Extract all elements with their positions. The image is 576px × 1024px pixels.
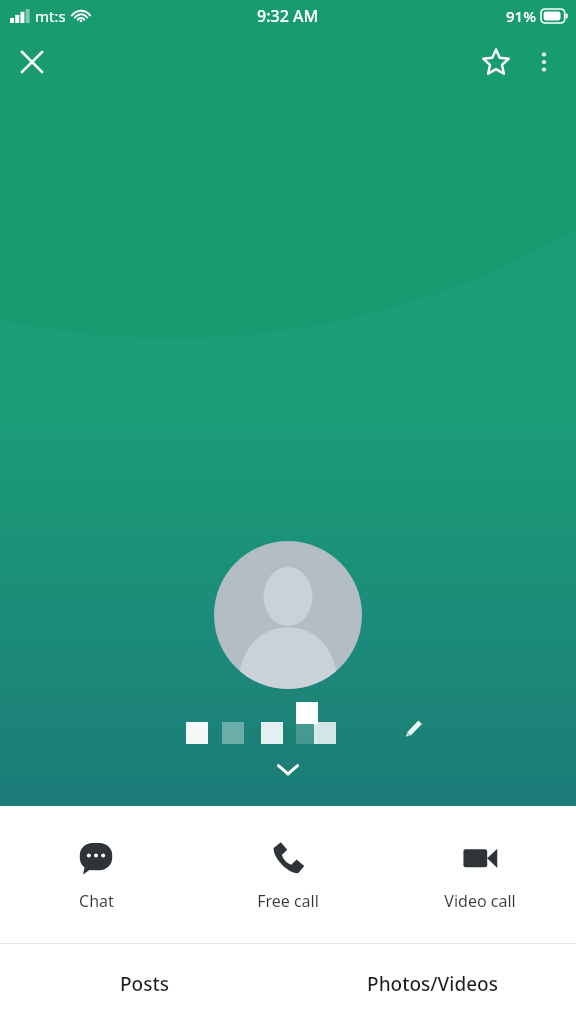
staticText: Video call <box>444 890 516 912</box>
button[interactable]: Edit name <box>392 706 436 750</box>
button[interactable]: Chat <box>0 830 192 920</box>
button[interactable]: Video call <box>384 830 576 920</box>
staticText: mt:s <box>35 6 66 26</box>
button[interactable]: Posts <box>0 944 288 1024</box>
staticText: Chat <box>79 890 114 912</box>
button[interactable]: More options <box>520 38 568 86</box>
button[interactable]: Free call <box>192 830 384 920</box>
staticText: 9:32 AM <box>257 5 319 27</box>
staticText: 91% <box>506 6 536 26</box>
staticText: Free call <box>257 890 319 912</box>
staticText: Photos/Videos <box>367 971 498 997</box>
button[interactable]: Close <box>8 38 56 86</box>
staticText: Posts <box>120 971 169 997</box>
button[interactable]: Show more <box>267 748 309 790</box>
button[interactable]: Photos/Videos <box>288 944 576 1024</box>
button[interactable]: Favorite <box>472 38 520 86</box>
button[interactable]: Profile photo <box>214 541 362 689</box>
